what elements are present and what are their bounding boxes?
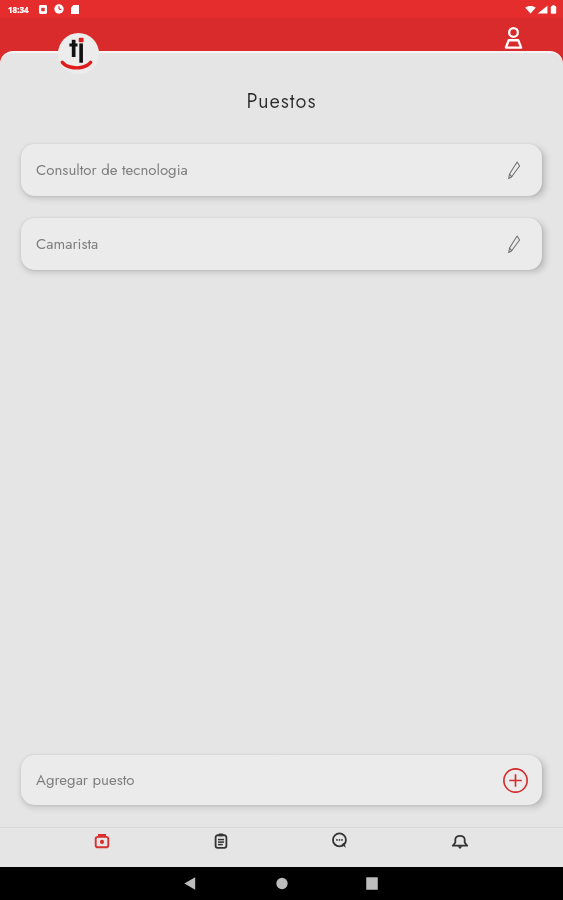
button[interactable]: Agregar puesto [21, 755, 542, 805]
button[interactable]: Recents [352, 867, 392, 900]
staticText: Camarista [36, 233, 99, 255]
button[interactable]: Consultor de tecnologia [21, 144, 542, 196]
button[interactable]: Edit [502, 232, 526, 256]
staticText: Puestos [0, 87, 563, 116]
button[interactable]: Home [262, 867, 302, 900]
button[interactable]: Back [170, 867, 210, 900]
staticText: Agregar puesto [36, 769, 135, 791]
staticText: Consultor de tecnologia [36, 159, 188, 181]
button[interactable]: Profile [497, 21, 529, 53]
staticText: 18:34 [8, 4, 29, 15]
button[interactable]: Chat [280, 828, 400, 853]
button[interactable]: Notifications [400, 828, 520, 853]
button[interactable]: App logo [58, 33, 99, 74]
button[interactable]: Camarista [21, 218, 542, 270]
button[interactable]: Edit [502, 158, 526, 182]
button[interactable]: Applications [161, 828, 280, 853]
button[interactable]: Add [502, 767, 529, 794]
button[interactable]: Jobs [42, 828, 161, 853]
